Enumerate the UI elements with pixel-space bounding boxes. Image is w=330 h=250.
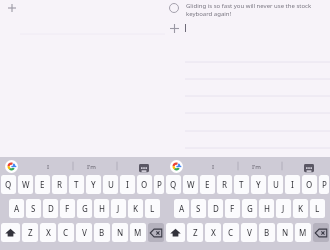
button[interactable]: S	[191, 199, 206, 218]
button[interactable]: I	[285, 175, 300, 194]
button[interactable]: L	[310, 199, 325, 218]
button[interactable]: A	[174, 199, 189, 218]
button[interactable]: C	[223, 223, 239, 242]
staticText: A	[14, 203, 20, 214]
button[interactable]: M	[130, 223, 146, 242]
button[interactable]: N	[277, 223, 293, 242]
staticText: J	[117, 203, 120, 214]
button[interactable]: F	[60, 199, 75, 218]
button[interactable]: Z	[187, 223, 203, 242]
button[interactable]: V	[241, 223, 257, 242]
button[interactable]: B	[94, 223, 110, 242]
button[interactable]: R	[217, 175, 232, 194]
button[interactable]: V	[76, 223, 92, 242]
button[interactable]: F	[225, 199, 240, 218]
button[interactable]: Y	[86, 175, 101, 194]
button[interactable]: J	[111, 199, 126, 218]
button[interactable]: I	[33, 158, 63, 176]
button[interactable]: J	[276, 199, 291, 218]
staticText: I'm	[87, 163, 96, 171]
staticText: O	[306, 179, 313, 190]
staticText: P	[157, 179, 162, 190]
button[interactable]: Backspace	[313, 223, 329, 242]
button[interactable]: P	[154, 175, 164, 194]
staticText: U	[273, 179, 279, 190]
staticText: M	[299, 227, 307, 238]
staticText: Y	[91, 179, 96, 190]
staticText: I'm	[252, 163, 261, 171]
button[interactable]: T	[234, 175, 249, 194]
button[interactable]: E	[200, 175, 215, 194]
staticText: Gliding is so fast you will never use th…	[186, 2, 314, 18]
button[interactable]: D	[43, 199, 58, 218]
button[interactable]: S	[26, 199, 41, 218]
staticText: L	[150, 203, 155, 214]
button[interactable]: G	[77, 199, 92, 218]
staticText: Q	[5, 179, 12, 190]
staticText: G	[82, 203, 88, 214]
button[interactable]: Google	[4, 159, 18, 173]
button[interactable]: X	[40, 223, 56, 242]
button[interactable]: T	[69, 175, 84, 194]
staticText: C	[63, 227, 69, 238]
staticText: H	[264, 203, 270, 214]
button[interactable]: Checkbox	[167, 1, 181, 15]
staticText: I	[212, 163, 215, 171]
button[interactable]: I	[120, 175, 135, 194]
button[interactable]: L	[145, 199, 160, 218]
button[interactable]: A	[9, 199, 24, 218]
staticText: J	[282, 203, 285, 214]
button[interactable]: W	[183, 175, 198, 194]
button[interactable]: U	[103, 175, 118, 194]
staticText: X	[46, 227, 51, 238]
button[interactable]: Add item	[167, 21, 181, 35]
button[interactable]: I'm	[76, 158, 106, 176]
button[interactable]: W	[18, 175, 33, 194]
button[interactable]: O	[302, 175, 317, 194]
button[interactable]: H	[94, 199, 109, 218]
button[interactable]: U	[268, 175, 283, 194]
button[interactable]: O	[137, 175, 152, 194]
button[interactable]: Backspace	[148, 223, 164, 242]
button[interactable]: Shift	[166, 223, 185, 242]
staticText: T	[74, 179, 79, 190]
button[interactable]: B	[259, 223, 275, 242]
button[interactable]: E	[35, 175, 50, 194]
button[interactable]: N	[112, 223, 128, 242]
staticText: V	[82, 227, 87, 238]
staticText: K	[133, 203, 139, 214]
staticText: I	[47, 163, 50, 171]
button[interactable]: Z	[22, 223, 38, 242]
button[interactable]: Shift	[1, 223, 20, 242]
button[interactable]: K	[293, 199, 308, 218]
button[interactable]: D	[208, 199, 223, 218]
button[interactable]: Clipboard	[133, 159, 155, 177]
button[interactable]: X	[205, 223, 221, 242]
button[interactable]: Clipboard	[298, 159, 320, 177]
button[interactable]: R	[52, 175, 67, 194]
staticText: P	[322, 179, 327, 190]
button[interactable]: Google	[169, 159, 183, 173]
button[interactable]: Q	[1, 175, 16, 194]
button[interactable]: Q	[166, 175, 181, 194]
staticText: A	[179, 203, 185, 214]
staticText: F	[230, 203, 235, 214]
button[interactable]: I	[198, 158, 228, 176]
button[interactable]: P	[319, 175, 329, 194]
staticText: N	[117, 227, 124, 238]
staticText: W	[187, 179, 195, 190]
button[interactable]: Add item	[5, 1, 19, 15]
staticText: R	[222, 179, 228, 190]
button[interactable]: M	[295, 223, 311, 242]
staticText: E	[205, 179, 210, 190]
staticText: S	[31, 203, 36, 214]
button[interactable]: C	[58, 223, 74, 242]
staticText: V	[247, 227, 252, 238]
button[interactable]: H	[259, 199, 274, 218]
button[interactable]: K	[128, 199, 143, 218]
staticText: I	[291, 179, 294, 190]
button[interactable]: Y	[251, 175, 266, 194]
button[interactable]: I'm	[241, 158, 271, 176]
staticText: I	[126, 179, 129, 190]
button[interactable]: G	[242, 199, 257, 218]
